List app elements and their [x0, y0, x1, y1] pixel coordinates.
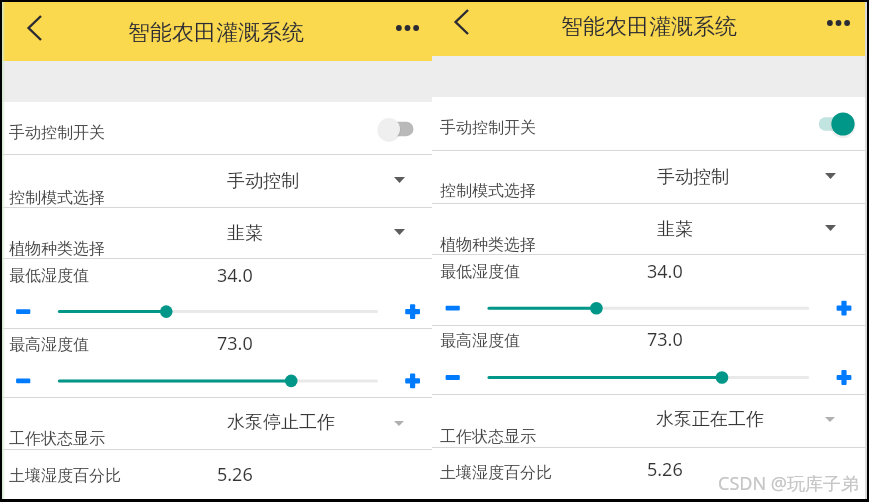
button[interactable]: Increase: [399, 298, 427, 326]
button[interactable]: Decrease: [439, 364, 467, 392]
button[interactable]: [0, 259, 432, 329]
staticText: 控制模式选择: [440, 181, 536, 201]
button[interactable]: [0, 101, 432, 154]
staticText: 韭菜: [657, 218, 693, 241]
button[interactable]: Decrease: [9, 298, 37, 326]
button[interactable]: [432, 97, 866, 150]
staticText: 34.0: [217, 263, 253, 288]
staticText: 73.0: [217, 331, 253, 356]
staticText: 土壤湿度百分比: [9, 466, 121, 486]
staticText: 智能农田灌溉系统: [561, 13, 737, 41]
staticText: 最低湿度值: [440, 262, 520, 282]
staticText: 5.26: [647, 457, 683, 482]
button[interactable]: Increase: [399, 367, 427, 395]
button[interactable]: [0, 398, 432, 450]
staticText: 土壤湿度百分比: [440, 463, 552, 483]
staticText: 73.0: [647, 327, 683, 352]
button[interactable]: [0, 450, 432, 500]
button[interactable]: More options: [823, 8, 853, 38]
button[interactable]: Humidity slider: [483, 296, 814, 320]
button[interactable]: Increase: [830, 294, 858, 322]
button[interactable]: [432, 151, 866, 204]
staticText: 韭菜: [227, 222, 263, 245]
button[interactable]: [432, 326, 866, 396]
button[interactable]: [432, 255, 866, 325]
staticText: 水泵正在工作: [656, 408, 764, 431]
staticText: 智能农田灌溉系统: [128, 19, 304, 47]
button[interactable]: Humidity slider: [483, 366, 814, 390]
staticText: 手动控制: [657, 166, 729, 189]
staticText: CSDN @玩库子弟: [718, 471, 859, 496]
button[interactable]: [432, 395, 866, 447]
staticText: 最高湿度值: [9, 335, 89, 355]
button[interactable]: Decrease: [9, 367, 37, 395]
staticText: 工作状态显示: [9, 429, 105, 449]
staticText: 植物种类选择: [440, 235, 536, 255]
staticText: 水泵停止工作: [227, 411, 335, 434]
button[interactable]: [432, 448, 866, 500]
staticText: 5.26: [217, 462, 253, 487]
button[interactable]: Humidity slider: [53, 369, 382, 393]
staticText: 最高湿度值: [440, 331, 520, 351]
button[interactable]: Decrease: [439, 294, 467, 322]
staticText: 最低湿度值: [9, 266, 89, 286]
staticText: 控制模式选择: [9, 188, 105, 208]
button[interactable]: [432, 204, 866, 256]
staticText: 34.0: [647, 259, 683, 284]
button[interactable]: Back: [19, 13, 49, 43]
staticText: 植物种类选择: [9, 239, 105, 259]
button[interactable]: [0, 208, 432, 259]
button[interactable]: [0, 329, 432, 398]
button[interactable]: Manual control switch: [368, 113, 410, 145]
button[interactable]: Increase: [830, 364, 858, 392]
staticText: 手动控制: [227, 170, 299, 193]
button[interactable]: Humidity slider: [53, 300, 382, 324]
staticText: 工作状态显示: [440, 427, 536, 447]
button[interactable]: [0, 155, 432, 207]
staticText: 手动控制开关: [440, 118, 536, 138]
button[interactable]: Back: [446, 7, 476, 37]
button[interactable]: More options: [392, 13, 422, 43]
button[interactable]: Manual control switch: [822, 108, 864, 140]
staticText: 手动控制开关: [9, 123, 105, 143]
